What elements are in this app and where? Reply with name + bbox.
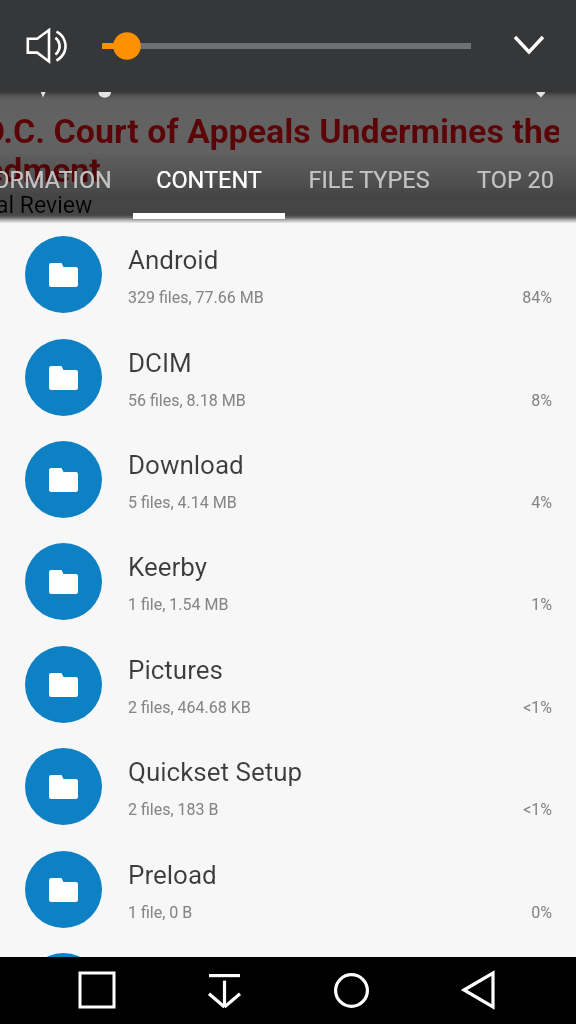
button[interactable]: Recent apps: [73, 966, 121, 1014]
staticText: DCIM: [128, 348, 192, 378]
button[interactable]: Pictures: [0, 633, 576, 736]
staticText: Download: [128, 450, 244, 480]
button[interactable]: FILE TYPES: [285, 166, 453, 223]
button[interactable]: Back: [454, 966, 502, 1014]
button[interactable]: Preload: [0, 838, 576, 941]
staticText: INFORMATION: [0, 166, 112, 194]
button[interactable]: CONTENT: [133, 166, 285, 223]
staticText: CONTENT: [156, 166, 262, 194]
staticText: 1 file, 0 B: [128, 903, 193, 922]
staticText: 2 files, 464.68 KB: [128, 698, 251, 717]
staticText: 0%: [531, 903, 552, 922]
staticText: <1%: [523, 698, 552, 717]
staticText: Android: [128, 245, 219, 275]
staticText: 56 files, 8.18 MB: [128, 391, 246, 410]
staticText: FILE TYPES: [308, 166, 430, 194]
button[interactable]: TOP 20: [453, 166, 576, 223]
staticText: Preload: [128, 860, 217, 890]
staticText: Pictures: [128, 655, 223, 685]
staticText: <1%: [523, 800, 552, 819]
staticText: Quickset Setup: [128, 757, 303, 787]
button[interactable]: Collapse volume panel: [505, 20, 553, 68]
button[interactable]: Download: [0, 428, 576, 531]
staticText: 2 files, 183 B: [128, 800, 219, 819]
staticText: 1%: [531, 595, 552, 614]
staticText: al Review: [0, 192, 93, 219]
button[interactable]: Music: [0, 940, 576, 1024]
button[interactable]: Android: [0, 223, 576, 326]
staticText: 5 files, 4.14 MB: [128, 493, 237, 512]
button[interactable]: INFORMATION: [0, 166, 133, 223]
staticText: edment: [0, 150, 101, 190]
button[interactable]: Home: [327, 966, 375, 1014]
staticText: 1 file, 1.54 MB: [128, 595, 229, 614]
staticText: TOP 20: [477, 166, 554, 194]
button[interactable]: Quickset Setup: [0, 735, 576, 838]
staticText: 84%: [522, 288, 552, 307]
staticText: Keerby: [128, 552, 208, 582]
staticText: 329 files, 77.66 MB: [128, 288, 264, 307]
button[interactable]: DCIM: [0, 326, 576, 429]
staticText: 4%: [531, 493, 552, 512]
button[interactable]: Mute volume: [22, 22, 70, 70]
staticText: D.C. Court of Appeals Undermines the F: [0, 111, 559, 151]
button[interactable]: Downloads: [200, 966, 248, 1014]
staticText: 8%: [531, 391, 552, 410]
button[interactable]: Keerby: [0, 530, 576, 633]
